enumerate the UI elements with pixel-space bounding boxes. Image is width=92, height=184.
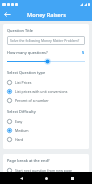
staticText: 5	[82, 50, 85, 55]
staticText: Start next question from new page	[15, 168, 73, 172]
staticText: List Prices	[15, 80, 32, 85]
button[interactable]: Back	[16, 173, 26, 183]
staticText: Money Raisers	[27, 11, 66, 19]
button[interactable]: Easy	[7, 117, 85, 126]
staticText: Medium	[15, 128, 29, 133]
staticText: Easy	[15, 119, 23, 124]
staticText: Select Question type	[7, 70, 46, 75]
staticText: How many questions?	[7, 50, 48, 55]
staticText: Select Difficulty	[7, 109, 36, 114]
button[interactable]: Start next question from new page	[7, 166, 85, 172]
staticText: Hard	[15, 137, 24, 142]
staticText: Question Title	[7, 28, 33, 33]
staticText: Percent of a number	[15, 98, 49, 103]
button[interactable]: Back	[2, 9, 13, 20]
staticText: Solve the following Money Matter Problem…	[10, 38, 80, 43]
button[interactable]: Percent of a number	[7, 96, 85, 105]
button[interactable]: Home	[41, 173, 51, 183]
button[interactable]: Medium	[7, 126, 85, 135]
button[interactable]: Hard	[7, 135, 85, 144]
button[interactable]: Number of questions slider	[7, 58, 85, 65]
button[interactable]: Solve the following Money Matter Problem…	[7, 36, 85, 45]
staticText: List prices with unit conversions	[15, 89, 68, 94]
button[interactable]: List prices with unit conversions	[7, 87, 85, 96]
button[interactable]: Recent apps	[67, 173, 77, 183]
staticText: Page break at the end?	[7, 158, 50, 163]
button[interactable]: List Prices	[7, 78, 85, 87]
